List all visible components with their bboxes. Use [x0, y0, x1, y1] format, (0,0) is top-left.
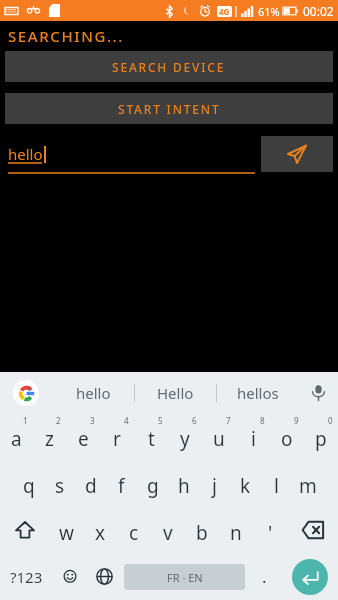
staticText: c: [129, 520, 139, 546]
button[interactable]: 4: [100, 413, 134, 459]
button[interactable]: c: [117, 506, 151, 553]
staticText: 6: [192, 415, 197, 426]
staticText: w: [59, 520, 74, 546]
button[interactable]: 6: [168, 413, 202, 459]
button[interactable]: ?123: [0, 553, 52, 600]
button[interactable]: q: [14, 459, 44, 506]
button[interactable]: FR · EN: [124, 564, 245, 590]
staticText: j: [212, 473, 217, 499]
button[interactable]: Send: [261, 136, 333, 172]
staticText: g: [147, 473, 159, 499]
button[interactable]: w: [50, 506, 83, 553]
button[interactable]: Voice input: [298, 372, 338, 413]
staticText: hello: [76, 383, 111, 403]
button[interactable]: k: [230, 459, 261, 506]
button[interactable]: n: [219, 506, 253, 553]
button[interactable]: s: [44, 459, 75, 506]
button[interactable]: b: [185, 506, 219, 553]
button[interactable]: Enter: [292, 559, 328, 595]
staticText: ': [268, 520, 273, 546]
staticText: .: [262, 565, 267, 588]
button[interactable]: Hello: [135, 372, 216, 413]
button[interactable]: .: [247, 553, 282, 600]
staticText: 2: [56, 415, 61, 426]
button[interactable]: 7: [202, 413, 236, 459]
staticText: x: [95, 520, 106, 546]
button[interactable]: hello: [8, 134, 255, 174]
button[interactable]: Google: [0, 372, 52, 413]
staticText: hellos: [237, 383, 279, 403]
button[interactable]: Backspace: [287, 506, 338, 553]
button[interactable]: SEARCH DEVICE: [5, 51, 333, 82]
staticText: 0: [328, 415, 333, 426]
staticText: 7: [226, 415, 231, 426]
staticText: y: [180, 426, 190, 452]
button[interactable]: 9: [270, 413, 304, 459]
staticText: Hello: [157, 383, 194, 403]
staticText: 5: [158, 415, 163, 426]
button[interactable]: 0: [304, 413, 338, 459]
staticText: k: [240, 473, 251, 499]
button[interactable]: START INTENT: [5, 93, 333, 124]
staticText: z: [45, 426, 54, 452]
button[interactable]: g: [137, 459, 168, 506]
button[interactable]: d: [75, 459, 106, 506]
staticText: d: [85, 473, 97, 499]
staticText: v: [163, 520, 173, 546]
button[interactable]: h: [168, 459, 199, 506]
staticText: SEARCH DEVICE: [112, 59, 226, 75]
button[interactable]: 3: [66, 413, 100, 459]
staticText: 61%: [258, 4, 280, 19]
button[interactable]: hellos: [217, 372, 298, 413]
staticText: t: [148, 426, 155, 452]
staticText: a: [11, 426, 22, 452]
staticText: hello: [8, 144, 43, 164]
staticText: 3: [90, 415, 95, 426]
button[interactable]: 1: [0, 413, 33, 459]
button[interactable]: 8: [236, 413, 270, 459]
button[interactable]: l: [261, 459, 292, 506]
button[interactable]: 5: [134, 413, 168, 459]
button[interactable]: Shift: [0, 506, 50, 553]
staticText: FR · EN: [167, 570, 203, 585]
staticText: START INTENT: [118, 101, 221, 117]
button[interactable]: 2: [33, 413, 66, 459]
button[interactable]: m: [292, 459, 323, 506]
staticText: o: [281, 426, 293, 452]
staticText: q: [23, 473, 35, 499]
button[interactable]: j: [199, 459, 230, 506]
staticText: s: [55, 473, 65, 499]
staticText: SEARCHING...: [8, 26, 124, 46]
staticText: 8: [260, 415, 265, 426]
staticText: u: [213, 426, 225, 452]
staticText: 4G: [219, 6, 230, 17]
staticText: m: [299, 473, 317, 499]
staticText: b: [196, 520, 208, 546]
staticText: f: [118, 473, 125, 499]
staticText: r: [113, 426, 121, 452]
button[interactable]: hello: [52, 372, 134, 413]
staticText: 9: [294, 415, 299, 426]
button[interactable]: x: [83, 506, 117, 553]
button[interactable]: Emoji: [52, 553, 87, 600]
button[interactable]: Change language: [87, 553, 122, 600]
staticText: 1: [23, 415, 28, 426]
staticText: 4: [124, 415, 129, 426]
staticText: n: [230, 520, 242, 546]
staticText: p: [315, 426, 327, 452]
staticText: e: [78, 426, 89, 452]
staticText: l: [274, 473, 279, 499]
button[interactable]: f: [106, 459, 137, 506]
button[interactable]: ': [253, 506, 287, 553]
staticText: 00:02: [303, 3, 334, 19]
staticText: ?123: [10, 567, 43, 587]
button[interactable]: v: [151, 506, 185, 553]
staticText: i: [251, 426, 256, 452]
staticText: h: [178, 473, 190, 499]
